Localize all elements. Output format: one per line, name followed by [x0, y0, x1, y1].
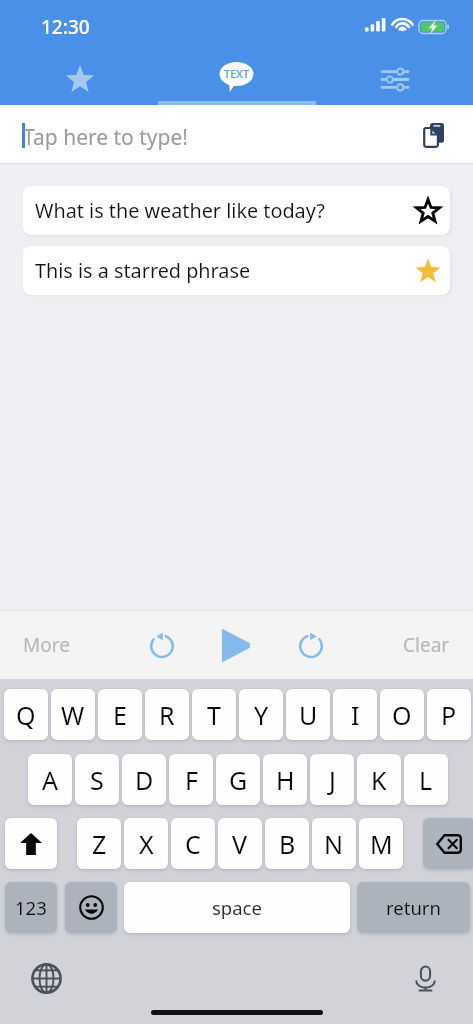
button[interactable]: I	[333, 689, 377, 740]
staticText: return	[386, 895, 441, 920]
staticText: TEXT	[224, 66, 250, 81]
button[interactable]: What is the weather like today?	[23, 186, 450, 235]
button[interactable]: Y	[239, 689, 283, 740]
button[interactable]: Play	[210, 629, 262, 661]
button[interactable]: Rewind	[136, 629, 188, 661]
button[interactable]: Dictate	[405, 958, 445, 998]
button[interactable]: Switch language	[26, 958, 66, 998]
button[interactable]: B	[265, 818, 309, 869]
button[interactable]: M	[359, 818, 403, 869]
button[interactable]: return	[357, 882, 470, 933]
button[interactable]: Q	[4, 689, 48, 740]
staticText: Tap here to type!	[23, 123, 188, 152]
staticText: X	[139, 827, 154, 861]
staticText: This is a starred phrase	[35, 257, 251, 284]
button[interactable]: U	[286, 689, 330, 740]
button[interactable]: D	[122, 754, 166, 805]
staticText: What is the weather like today?	[35, 197, 325, 224]
button[interactable]: T	[192, 689, 236, 740]
staticText: R	[159, 698, 175, 732]
button[interactable]	[1, 55, 158, 105]
staticText: Clear	[403, 632, 450, 658]
staticText: D	[135, 763, 154, 797]
staticText: J	[329, 763, 336, 797]
staticText: N	[324, 827, 344, 861]
staticText: T	[207, 698, 221, 732]
staticText: V	[232, 827, 248, 861]
button[interactable]: C	[171, 818, 215, 869]
button[interactable]: Backspace	[423, 818, 473, 869]
staticText: E	[113, 698, 127, 732]
button[interactable]: N	[312, 818, 356, 869]
staticText: G	[229, 763, 248, 797]
button[interactable]	[316, 55, 473, 105]
button[interactable]: Z	[77, 818, 121, 869]
staticText: Y	[254, 698, 269, 732]
staticText: B	[279, 827, 296, 861]
button[interactable]: Clear	[386, 619, 466, 671]
staticText: 12:30	[41, 14, 90, 40]
button[interactable]: W	[51, 689, 95, 740]
staticText: A	[42, 763, 58, 797]
button[interactable]: Emoji	[65, 882, 117, 933]
button[interactable]: A	[28, 754, 72, 805]
staticText: O	[392, 698, 412, 732]
button[interactable]: 123	[5, 882, 57, 933]
staticText: K	[371, 763, 387, 797]
button[interactable]: More	[6, 619, 86, 671]
staticText: M	[370, 827, 393, 861]
staticText: S	[90, 763, 104, 797]
staticText: W	[61, 698, 85, 732]
staticText: H	[276, 763, 295, 797]
staticText: 123	[15, 895, 47, 920]
button[interactable]: J	[310, 754, 354, 805]
staticText: P	[441, 698, 457, 732]
staticText: L	[419, 763, 433, 797]
staticText: Q	[16, 698, 36, 732]
staticText: I	[351, 698, 360, 732]
button[interactable]: L	[404, 754, 448, 805]
button[interactable]: TEXT	[158, 55, 315, 105]
button[interactable]: F	[169, 754, 213, 805]
button[interactable]: S	[75, 754, 119, 805]
button[interactable]: P	[427, 689, 471, 740]
staticText: More	[23, 632, 70, 658]
button[interactable]: This is a starred phrase	[23, 246, 450, 295]
button[interactable]: X	[124, 818, 168, 869]
button[interactable]: O	[380, 689, 424, 740]
button[interactable]: Star	[411, 194, 445, 228]
staticText: Z	[92, 827, 107, 861]
button[interactable]: H	[263, 754, 307, 805]
button[interactable]: E	[98, 689, 142, 740]
staticText: F	[185, 763, 198, 797]
button[interactable]: Forward	[285, 629, 337, 661]
staticText: C	[185, 827, 201, 861]
button[interactable]: K	[357, 754, 401, 805]
button[interactable]: R	[145, 689, 189, 740]
button[interactable]: G	[216, 754, 260, 805]
staticText: space	[212, 895, 262, 920]
button[interactable]: Unstar	[411, 254, 445, 288]
button[interactable]: Paste	[413, 115, 453, 155]
button[interactable]: V	[218, 818, 262, 869]
button[interactable]: space	[124, 882, 350, 933]
button[interactable]: Shift	[5, 818, 57, 869]
staticText: U	[299, 698, 318, 732]
